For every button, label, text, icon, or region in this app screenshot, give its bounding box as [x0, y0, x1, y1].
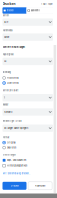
button[interactable]: Gastkonto	[26, 7, 53, 14]
staticText: A4	[4, 60, 6, 63]
button[interactable]: Drucken	[2, 182, 26, 190]
staticText: 1	[4, 96, 5, 99]
staticText: Querformat	[7, 82, 19, 84]
staticText: Seiten	[2, 14, 8, 17]
staticText: Gastkonto	[30, 9, 39, 12]
staticText: 1 Blatt Papier	[41, 3, 53, 6]
staticText: Drucken	[10, 184, 18, 187]
staticText: Hintergrundgrafiken	[7, 164, 27, 167]
button[interactable]: 1	[2, 94, 53, 101]
button[interactable]: Hintergrundgrafiken	[2, 164, 53, 168]
staticText: Mit Systemdialog drucken…	[2, 172, 30, 175]
staticText: Farbmodus	[2, 29, 12, 32]
staticText: Abbrechen	[35, 184, 45, 187]
staticText: Seiten pro Blatt	[2, 89, 18, 92]
staticText: Beidseitiger Druck	[2, 120, 21, 122]
staticText: Drucken	[6, 9, 13, 12]
button[interactable]: Skalieren	[2, 146, 53, 149]
button[interactable]: Alle	[2, 18, 53, 26]
button[interactable]: Mit Systemdialog drucken…	[2, 172, 53, 175]
button[interactable]: Original	[2, 141, 53, 144]
button[interactable]: Kopf- und Fußzeilen	[2, 158, 53, 162]
staticText: Alle	[4, 21, 8, 23]
staticText: Skalieren	[7, 146, 16, 149]
staticText: Standard	[4, 111, 12, 113]
button[interactable]: A4	[2, 58, 53, 65]
button[interactable]: An langer Kante spiegeln	[2, 124, 53, 132]
button[interactable]: Farbe	[2, 33, 53, 41]
staticText: Hochformat	[7, 77, 19, 79]
staticText: An langer Kante spiegeln	[4, 127, 28, 129]
staticText: Drucken	[2, 2, 15, 6]
staticText: Format	[2, 136, 9, 139]
staticText: Richtung	[2, 71, 10, 73]
button[interactable]: Abbrechen	[28, 182, 52, 190]
staticText: Weitere Einstellungen	[2, 46, 24, 48]
button[interactable]: Standard	[2, 108, 53, 116]
button[interactable]: Drucken	[2, 7, 26, 14]
staticText: Papiergröße	[2, 53, 13, 56]
button[interactable]: Querformat	[2, 81, 53, 85]
staticText: Einstellungen	[2, 153, 15, 156]
staticText: Farbe	[4, 36, 9, 38]
staticText: Original	[7, 141, 16, 144]
staticText: Ränder	[2, 103, 8, 106]
button[interactable]: Hochformat	[2, 76, 53, 80]
staticText: Kopf- und Fußzeilen	[7, 159, 26, 162]
